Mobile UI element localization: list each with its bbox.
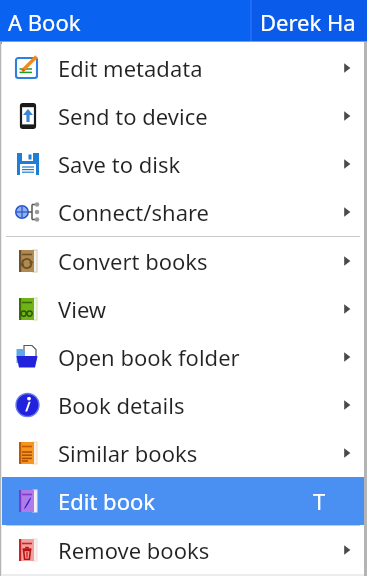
staticText: T (313, 486, 326, 516)
staticText: Convert books (58, 246, 340, 276)
button[interactable]: Send to device (2, 92, 364, 140)
button[interactable]: Derek Ha (252, 0, 367, 43)
staticText: Edit metadata (58, 53, 340, 83)
button[interactable]: Open book folder (2, 333, 364, 381)
staticText: A Book (8, 7, 81, 37)
button[interactable]: Remove books (2, 526, 364, 574)
button[interactable]: A Book (0, 0, 250, 43)
staticText: Open book folder (58, 342, 340, 372)
staticText: Derek Ha (260, 7, 356, 37)
button[interactable]: Save to disk (2, 140, 364, 188)
button[interactable]: Similar books (2, 429, 364, 477)
staticText: Edit book (58, 486, 313, 516)
button[interactable]: Connect/share (2, 188, 364, 236)
staticText: Connect/share (58, 197, 340, 227)
staticText: Book details (58, 390, 340, 420)
button[interactable]: Edit book (2, 477, 364, 525)
button[interactable]: View (2, 285, 364, 333)
staticText: Similar books (58, 438, 340, 468)
staticText: Remove books (58, 535, 340, 565)
staticText: Send to device (58, 101, 340, 131)
button[interactable]: Book details (2, 381, 364, 429)
staticText: Save to disk (58, 149, 340, 179)
button[interactable]: Edit metadata (2, 44, 364, 92)
staticText: View (58, 294, 340, 324)
button[interactable]: Convert books (2, 237, 364, 285)
